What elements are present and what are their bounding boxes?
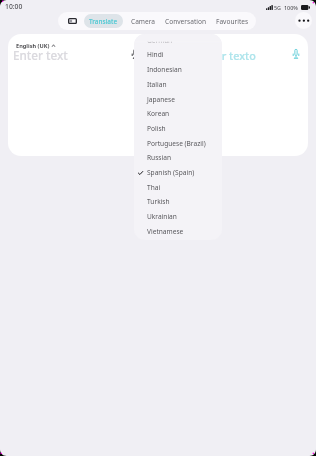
button[interactable]: Portuguese (Brazil) <box>134 136 222 151</box>
staticText: Conversation <box>165 17 207 26</box>
button[interactable]: Camera <box>129 14 157 28</box>
button[interactable]: Thai <box>134 180 222 195</box>
button[interactable]: Russian <box>134 150 222 165</box>
button[interactable]: Spanish (Spain) <box>161 42 209 50</box>
staticText: Japanese <box>147 95 175 104</box>
staticText: Indonesian <box>147 65 182 74</box>
button[interactable]: Polish <box>134 121 222 136</box>
staticText: English (UK) <box>16 42 50 50</box>
button[interactable]: Turkish <box>134 194 222 209</box>
button[interactable]: Conversation <box>163 14 209 28</box>
button[interactable]: Indonesian <box>134 62 222 77</box>
button[interactable]: Spanish (Spain) <box>134 165 222 180</box>
staticText: Vietnamese <box>147 227 184 236</box>
staticText: Enter text <box>13 47 68 63</box>
staticText: Turkish <box>147 197 170 206</box>
staticText: Thai <box>147 183 161 192</box>
staticText: Polish <box>147 124 166 133</box>
button[interactable]: Ukrainian <box>134 209 222 224</box>
staticText: Russian <box>147 153 171 162</box>
button[interactable]: Translate <box>84 14 123 28</box>
button[interactable]: More options <box>295 12 312 29</box>
staticText: Escribir texto <box>188 48 256 63</box>
staticText: 5G <box>274 4 282 11</box>
button[interactable]: Korean <box>134 106 222 121</box>
button[interactable]: English (UK) <box>8 34 150 156</box>
staticText: 100% <box>284 4 298 11</box>
staticText: Favourites <box>216 17 249 26</box>
button[interactable]: Favourites <box>214 14 251 28</box>
button[interactable]: Italian <box>134 77 222 92</box>
button[interactable]: German <box>134 34 222 48</box>
button[interactable]: Japanese <box>134 92 222 107</box>
button[interactable]: Spanish (Spain) <box>153 34 308 156</box>
staticText: Spanish (Spain) <box>147 168 195 177</box>
button[interactable]: Toggle panel <box>68 18 77 24</box>
button[interactable]: Voice input <box>292 49 300 59</box>
staticText: Translate <box>89 17 118 26</box>
staticText: Spanish (Spain) <box>161 42 204 50</box>
button[interactable]: Voice input <box>131 49 139 59</box>
staticText: Korean <box>147 109 170 118</box>
staticText: Portuguese (Brazil) <box>147 139 206 148</box>
staticText: Ukrainian <box>147 212 177 221</box>
button[interactable]: Hindi <box>134 47 222 62</box>
button[interactable]: English (UK) <box>16 42 55 50</box>
staticText: 10:00 <box>5 2 23 11</box>
staticText: Hindi <box>147 50 164 59</box>
button[interactable]: Vietnamese <box>134 224 222 239</box>
staticText: Camera <box>131 17 156 26</box>
staticText: German <box>147 36 173 45</box>
staticText: Italian <box>147 80 167 89</box>
